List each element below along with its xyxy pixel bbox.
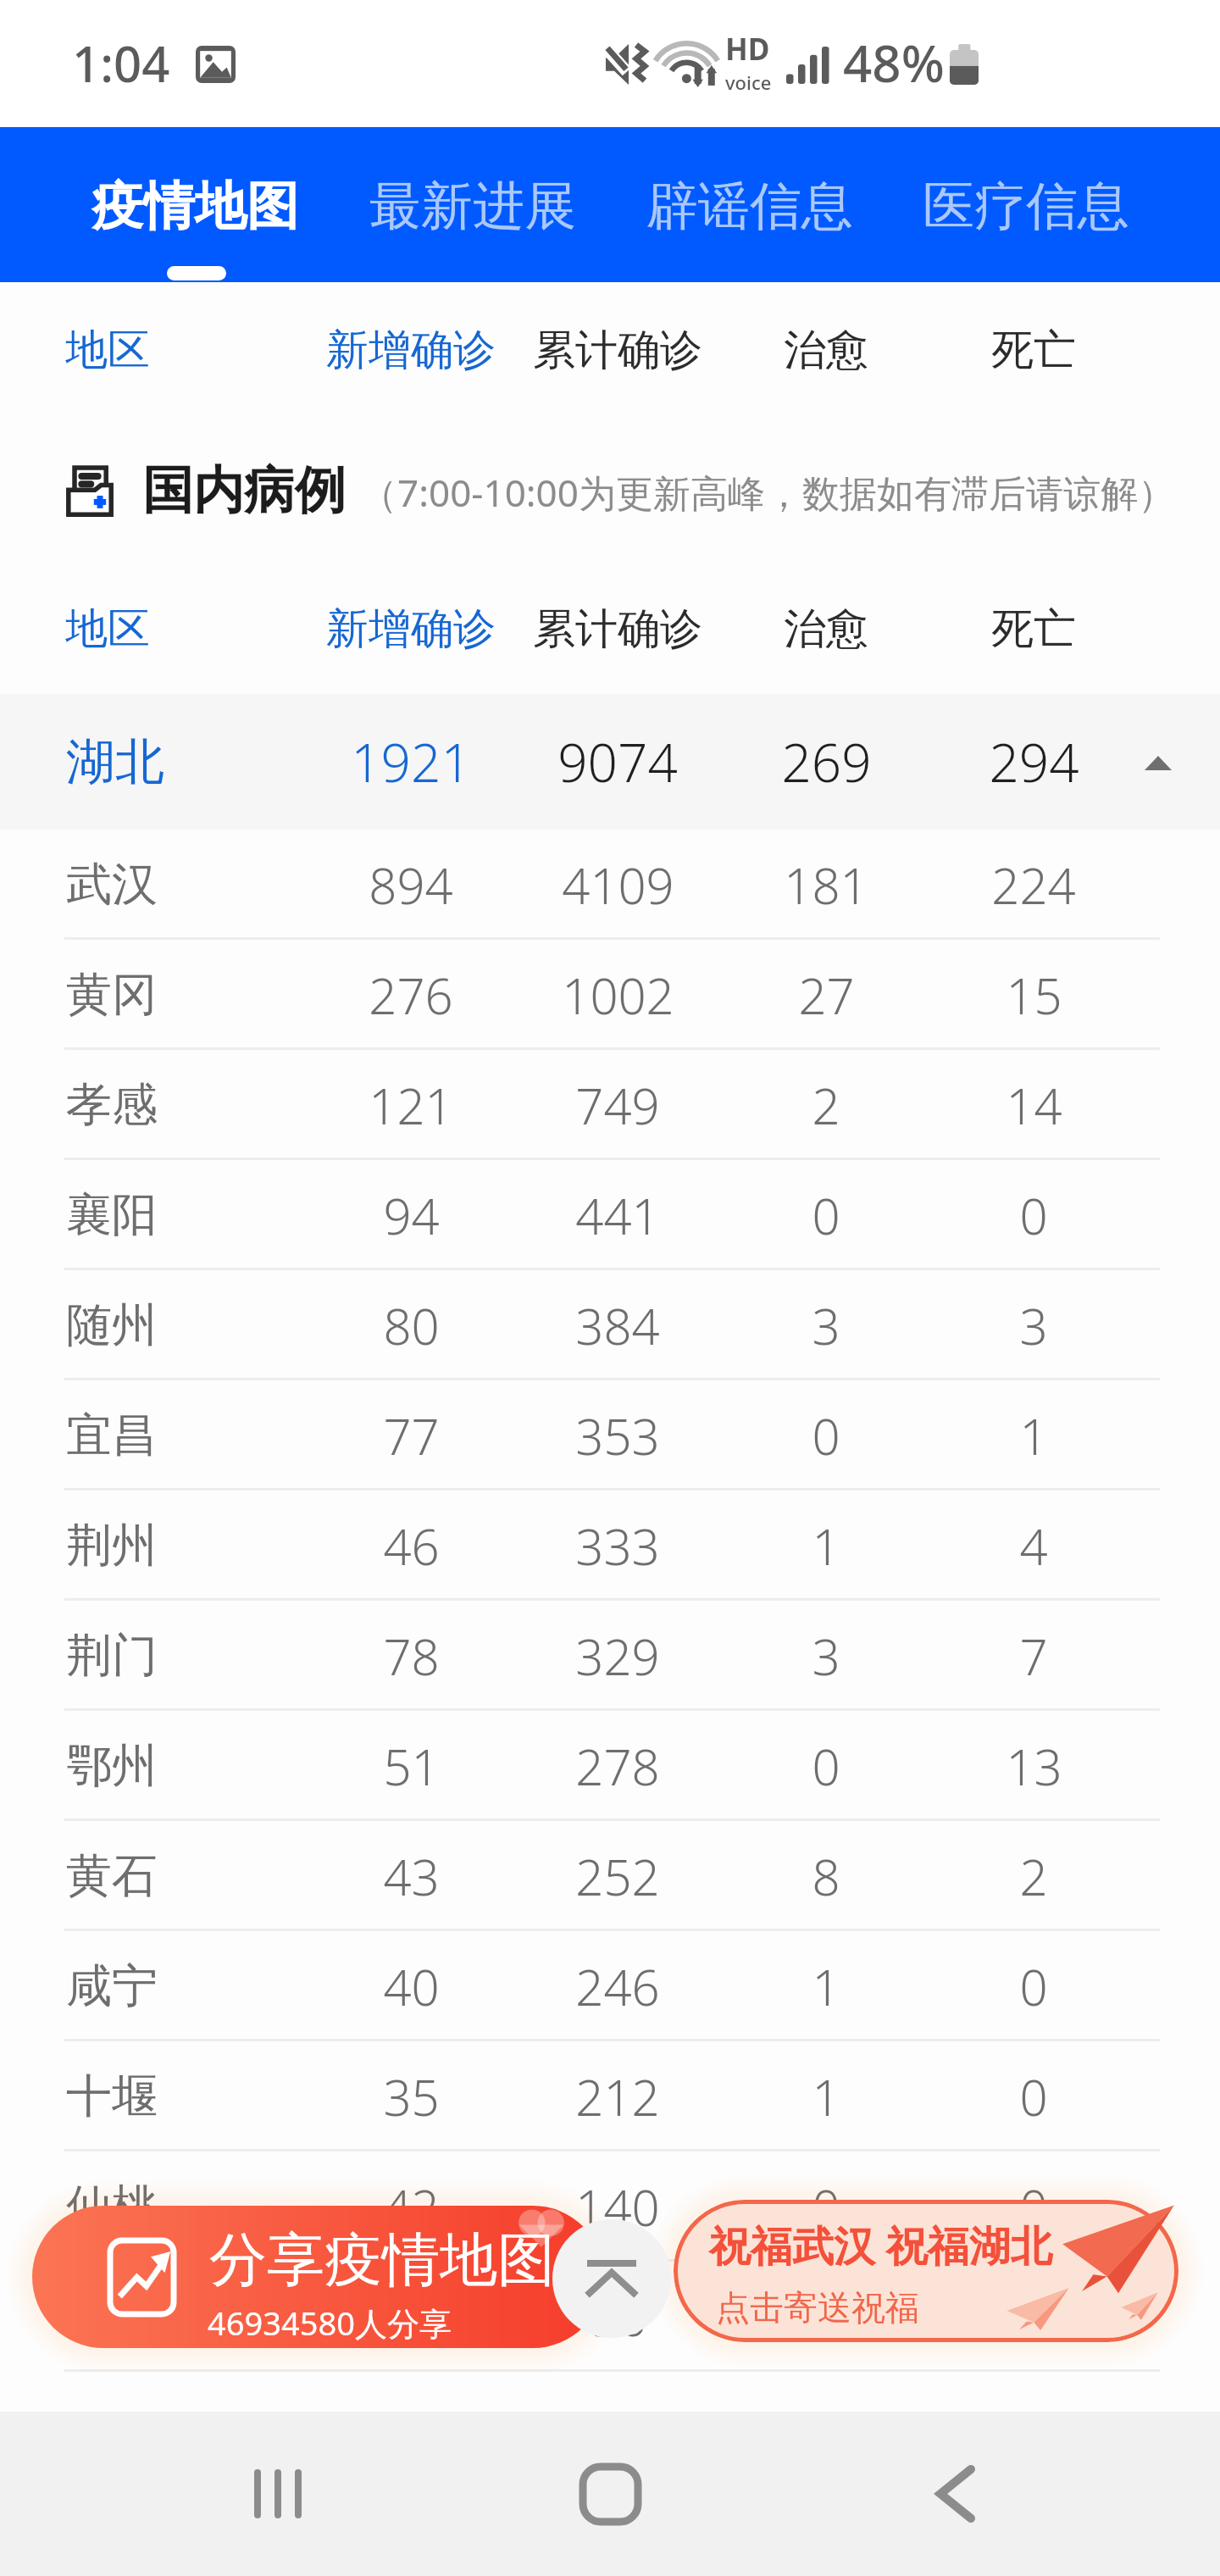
staticText: 医疗信息 xyxy=(923,174,1129,239)
staticText: 荆州 xyxy=(66,1517,158,1574)
button[interactable]: 孝感 xyxy=(0,1050,1220,1160)
staticText: 14 xyxy=(1006,1072,1062,1139)
button[interactable]: 治愈 xyxy=(682,602,970,656)
button[interactable]: 分享疫情地图 xyxy=(32,2206,604,2348)
staticText: 2 xyxy=(1019,1843,1048,1910)
button[interactable]: 累计确诊 xyxy=(474,324,762,377)
staticText: 国内病例 xyxy=(142,458,346,523)
staticText: 地区 xyxy=(65,324,150,377)
button[interactable]: 黄石 xyxy=(0,1821,1220,1931)
staticText: 3 xyxy=(812,1623,840,1690)
button[interactable]: 随州 xyxy=(0,1270,1220,1380)
staticText: 51 xyxy=(383,1733,440,1800)
staticText: 246 xyxy=(575,1953,660,2020)
staticText: 0 xyxy=(812,2173,840,2240)
staticText: 276 xyxy=(369,962,453,1029)
staticText: 0 xyxy=(812,1402,840,1469)
staticText: 孝感 xyxy=(66,1076,158,1134)
button[interactable]: 最新进展 xyxy=(333,136,613,275)
button[interactable]: 死亡 xyxy=(890,324,1178,377)
staticText: 42 xyxy=(383,2173,440,2240)
button[interactable]: 新增确诊 xyxy=(267,602,555,656)
button[interactable]: 医疗信息 xyxy=(886,136,1166,275)
staticText: 48% xyxy=(843,28,945,97)
button[interactable]: Home xyxy=(542,2426,678,2562)
button[interactable]: 累计确诊 xyxy=(474,602,762,656)
staticText: 死亡 xyxy=(991,602,1076,656)
staticText: 0 xyxy=(812,1733,840,1800)
button[interactable]: 疫情地图 xyxy=(55,136,335,275)
staticText: 0 xyxy=(812,2284,840,2351)
staticText: 140 xyxy=(575,2173,660,2240)
button[interactable]: 襄阳 xyxy=(0,1160,1220,1270)
staticText: 9074 xyxy=(557,726,678,797)
staticText: 94 xyxy=(383,1182,440,1249)
staticText: 21 xyxy=(383,2284,440,2351)
button[interactable]: 仙桃 xyxy=(0,2151,1220,2262)
button[interactable]: 死亡 xyxy=(890,602,1178,656)
staticText: 武汉 xyxy=(66,856,158,913)
staticText: 224 xyxy=(991,852,1076,919)
staticText: 46934580人分享 xyxy=(208,2301,452,2345)
staticText: 15 xyxy=(1006,962,1062,1029)
staticText: 7 xyxy=(1019,1623,1048,1690)
staticText: 辟谣信息 xyxy=(646,174,853,239)
staticText: 384 xyxy=(575,1292,660,1359)
staticText: HD xyxy=(725,29,770,69)
staticText: 1 xyxy=(812,2063,840,2130)
staticText: 1002 xyxy=(562,962,674,1029)
button[interactable]: 武汉 xyxy=(0,830,1220,940)
button[interactable]: 辟谣信息 xyxy=(610,136,890,275)
staticText: 212 xyxy=(575,2063,660,2130)
staticText: 4 xyxy=(1019,1513,1048,1579)
staticText: 最新进展 xyxy=(369,174,576,239)
staticText: 353 xyxy=(575,1402,660,1469)
staticText: 121 xyxy=(369,1072,453,1139)
button[interactable]: 荆州 xyxy=(0,1491,1220,1601)
staticText: 3 xyxy=(812,1292,840,1359)
staticText: 1:04 xyxy=(72,30,170,97)
staticText: 80 xyxy=(383,1292,440,1359)
button[interactable]: 黄冈 xyxy=(0,940,1220,1050)
button[interactable]: 咸宁 xyxy=(0,1931,1220,2041)
staticText: 269 xyxy=(781,726,872,797)
staticText: 治愈 xyxy=(784,324,868,377)
staticText: 333 xyxy=(575,1513,660,1579)
button[interactable]: 十堰 xyxy=(0,2041,1220,2151)
button[interactable]: 天门 xyxy=(0,2262,1220,2372)
staticText: 894 xyxy=(369,852,453,919)
button[interactable]: Recent apps xyxy=(207,2426,342,2562)
button[interactable]: Scroll to top xyxy=(552,2219,671,2338)
staticText: 仙桃 xyxy=(66,2178,158,2235)
staticText: 咸宁 xyxy=(66,1957,158,2015)
staticText: 13 xyxy=(1006,1733,1062,1800)
staticText: 329 xyxy=(575,1623,660,1690)
button[interactable]: 新增确诊 xyxy=(267,324,555,377)
button[interactable]: 宜昌 xyxy=(0,1380,1220,1491)
staticText: 0 xyxy=(1019,2063,1048,2130)
staticText: 黄冈 xyxy=(66,966,158,1024)
staticText: 分享疫情地图 xyxy=(209,2224,555,2297)
button[interactable]: 荆门 xyxy=(0,1601,1220,1711)
button[interactable]: Back xyxy=(888,2426,1023,2562)
staticText: 点击寄送祝福 xyxy=(716,2286,919,2329)
staticText: （7:00-10:00为更新高峰，数据如有滞后请谅解） xyxy=(360,467,1175,518)
staticText: 27 xyxy=(798,962,855,1029)
staticText: 死亡 xyxy=(991,324,1076,377)
staticText: 0 xyxy=(1019,1182,1048,1249)
staticText: 8 xyxy=(812,1843,840,1910)
staticText: 新增确诊 xyxy=(326,324,496,377)
staticText: 祝福武汉 祝福湖北 xyxy=(709,2217,1052,2273)
button[interactable]: 鄂州 xyxy=(0,1711,1220,1821)
staticText: 1 xyxy=(1019,1402,1048,1469)
staticText: 35 xyxy=(383,2063,440,2130)
staticText: 46 xyxy=(383,1513,440,1579)
staticText: 十堰 xyxy=(66,2068,158,2125)
staticText: 累计确诊 xyxy=(533,602,702,656)
button[interactable]: 治愈 xyxy=(682,324,970,377)
button[interactable]: 祝福武汉 祝福湖北 xyxy=(674,2200,1178,2342)
staticText: 襄阳 xyxy=(66,1186,158,1244)
staticText: 4109 xyxy=(562,852,674,919)
staticText: 鄂州 xyxy=(66,1737,158,1795)
button[interactable]: 湖北 xyxy=(0,694,1220,830)
